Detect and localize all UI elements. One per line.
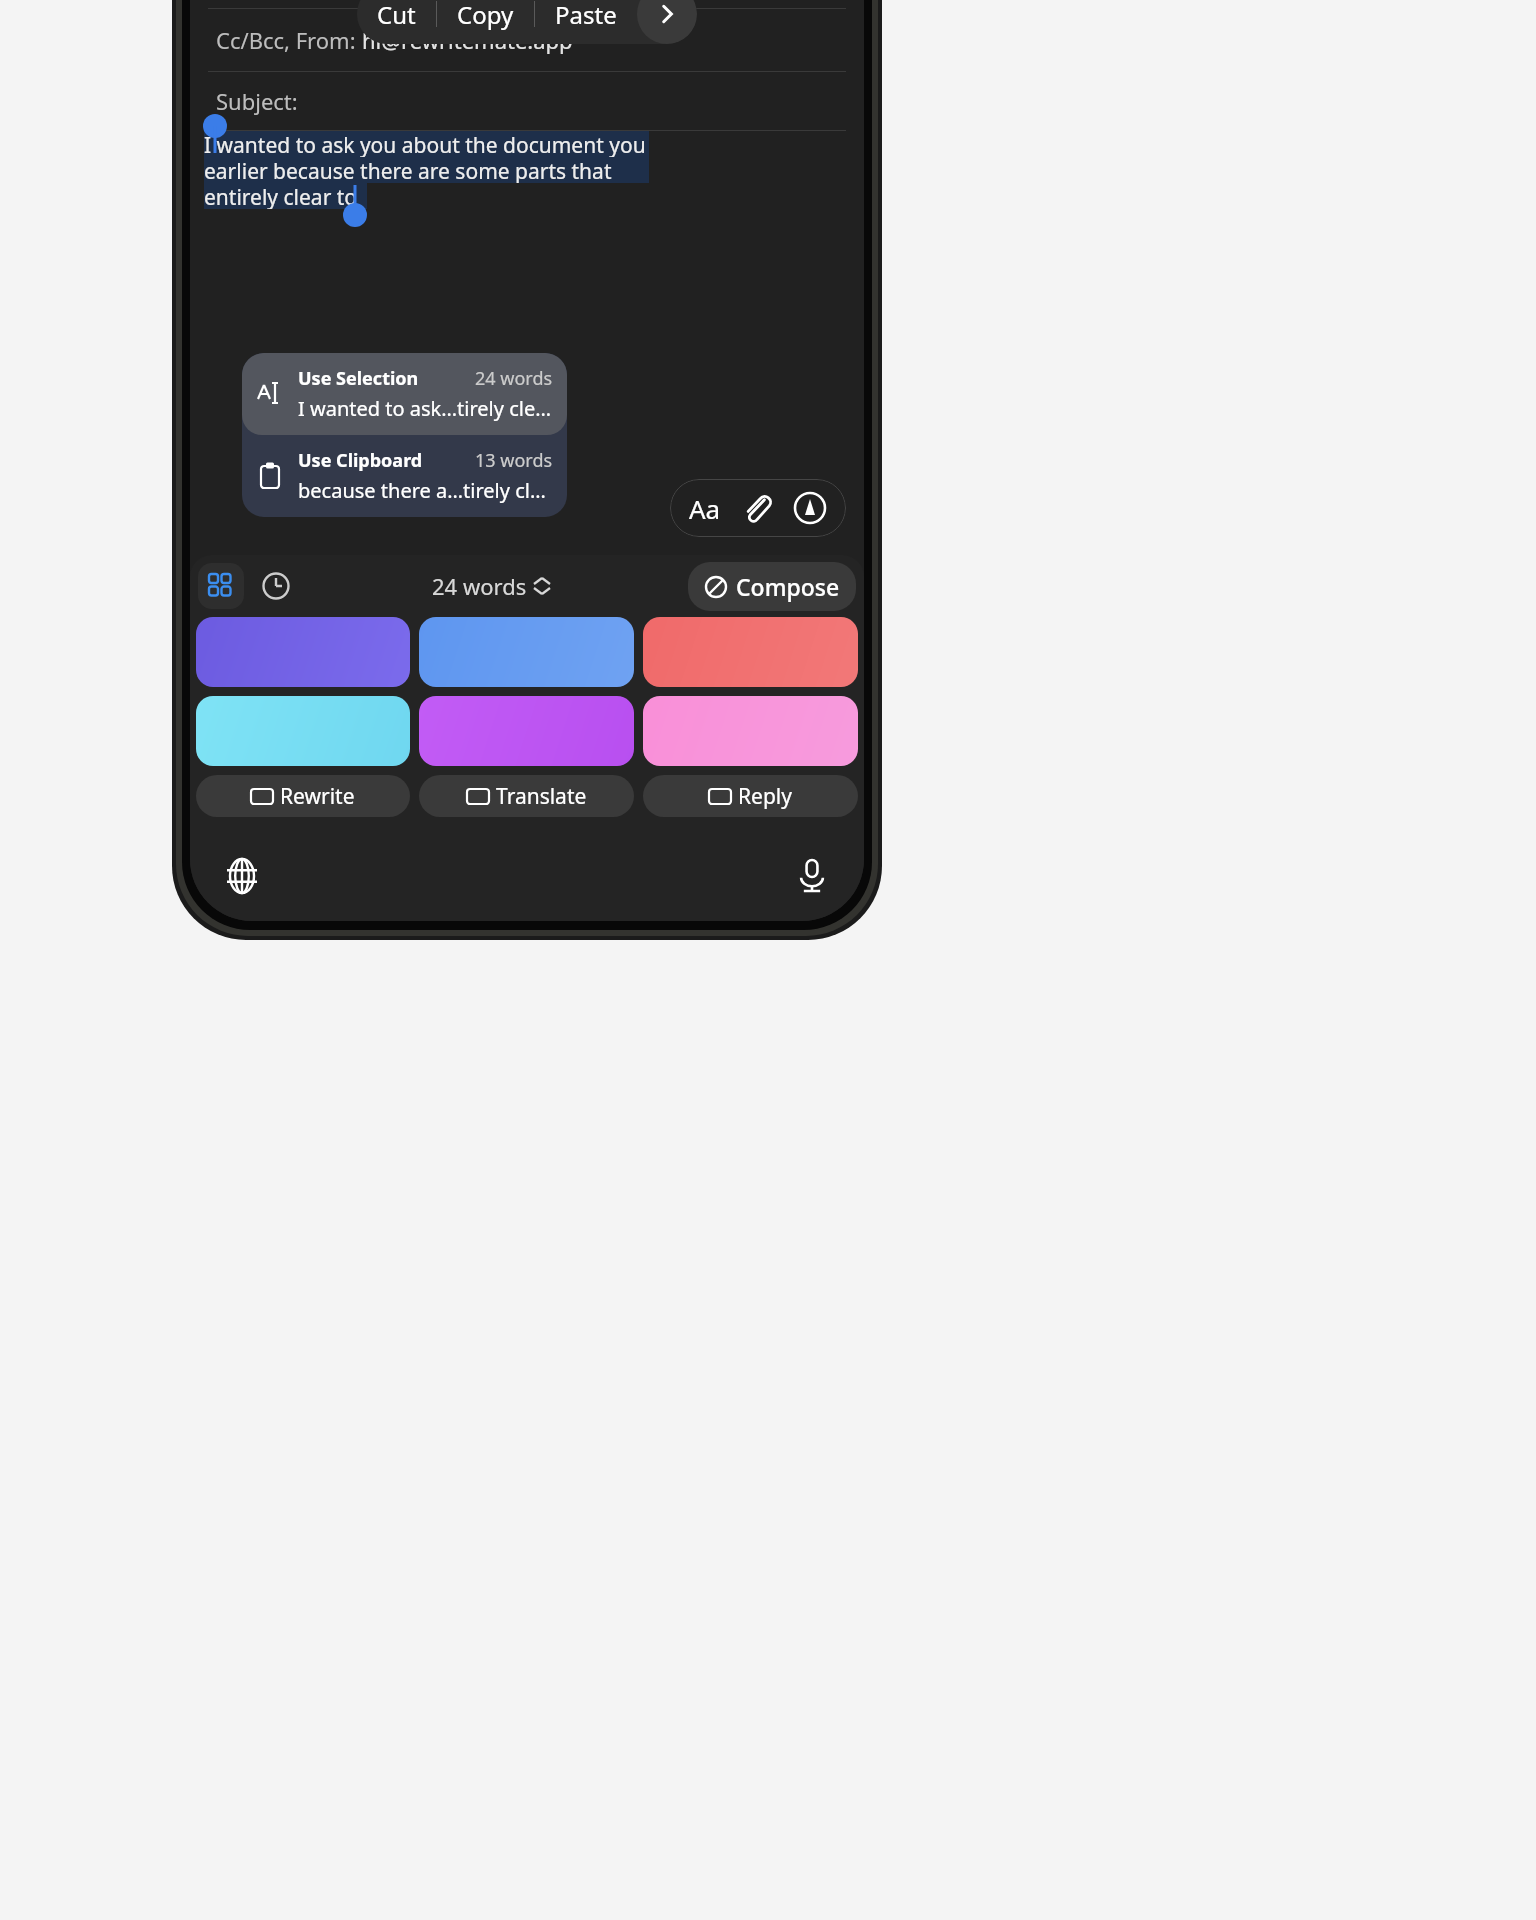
button[interactable] [196,696,410,766]
button[interactable]: Use Selection [256,366,553,422]
button[interactable]: Language [220,854,264,898]
button[interactable]: Compose [704,571,840,602]
button[interactable]: Copy [437,0,534,44]
button[interactable] [643,617,858,687]
staticText: Use Selection [298,366,419,391]
button[interactable]: Markup [793,491,827,525]
button[interactable]: Translate [419,775,634,817]
staticText: Cut [377,0,416,31]
staticText: Compose [736,571,840,602]
button[interactable]: More [637,0,697,44]
staticText: I wanted to ask you about the document y… [204,131,649,157]
button[interactable] [419,696,634,766]
staticText: Rewrite [280,782,355,811]
button[interactable]: Cut [357,0,436,44]
staticText: I wanted to ask…tirely clear to me. [298,395,553,422]
button[interactable] [196,617,410,687]
button[interactable]: Apps [198,563,244,609]
button[interactable]: Attach [740,491,774,525]
staticText: Copy [457,0,514,31]
staticText: Cc/Bcc, From: [216,25,362,55]
button[interactable]: Paste [535,0,637,44]
button[interactable] [419,617,634,687]
staticText: hi@rewritemate.app [362,25,573,55]
staticText: 13 words [475,448,553,473]
staticText: Aa [689,491,721,526]
staticText: Translate [496,782,587,811]
button[interactable]: 24 words [432,571,551,601]
staticText: 24 words [432,571,527,601]
button[interactable]: Use Clipboard [256,448,553,504]
staticText: Use Clipboard [298,448,423,473]
button[interactable]: Recent [256,566,296,606]
staticText: Paste [555,0,617,31]
staticText: Subject: [216,86,298,116]
staticText: Reply [738,782,792,811]
button[interactable]: Reply [643,775,858,817]
button[interactable]: Rewrite [196,775,410,817]
staticText: because there a…tirely clear to me. [298,477,553,504]
staticText: entirely clear to me. [204,183,367,209]
staticText: 24 words [475,366,553,391]
button[interactable] [643,696,858,766]
staticText: earlier because there are some parts tha… [204,157,649,183]
button[interactable]: Aa [670,479,846,537]
button[interactable]: Dictate [790,854,834,898]
